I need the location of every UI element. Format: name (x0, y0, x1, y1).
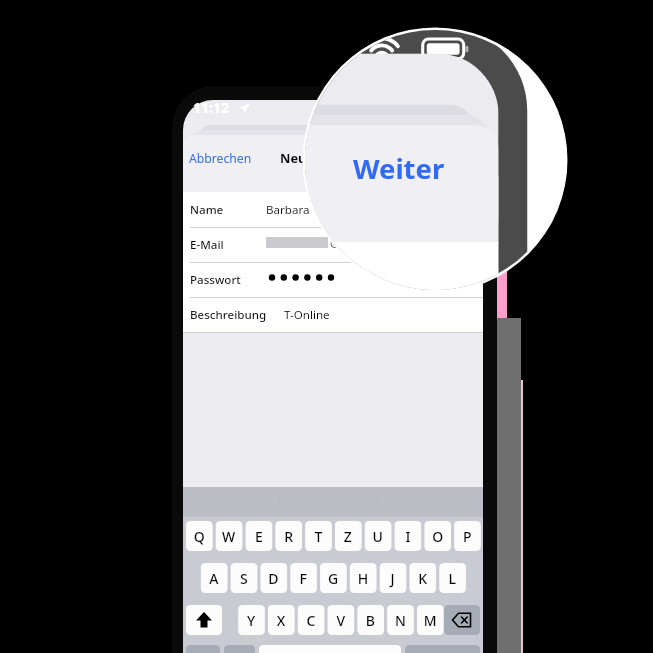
button[interactable]: Weiter (398, 134, 482, 172)
button[interactable] (186, 141, 278, 171)
button[interactable] (183, 262, 483, 297)
button[interactable] (183, 192, 483, 227)
button[interactable] (183, 227, 483, 262)
button[interactable] (183, 297, 483, 332)
